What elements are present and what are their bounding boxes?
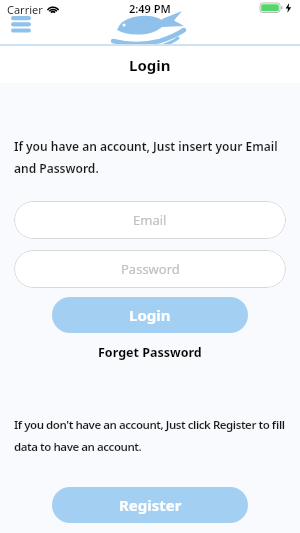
- staticText: Login: [129, 55, 171, 75]
- staticText: Carrier: [7, 2, 43, 17]
- staticText: Password: [121, 260, 180, 278]
- button[interactable]: [8, 13, 34, 35]
- button[interactable]: Register: [52, 487, 248, 523]
- staticText: If you don't have an account, Just click…: [14, 417, 286, 455]
- staticText: 2:49 PM: [129, 1, 171, 16]
- button[interactable]: Email: [14, 201, 286, 239]
- button[interactable]: Forget Password: [98, 344, 202, 361]
- button[interactable]: Login: [52, 297, 248, 333]
- staticText: If you have an account, Just insert your…: [14, 138, 286, 177]
- staticText: Register: [119, 495, 182, 515]
- staticText: Login: [129, 305, 171, 325]
- button[interactable]: Password: [14, 250, 286, 288]
- staticText: Email: [133, 211, 167, 229]
